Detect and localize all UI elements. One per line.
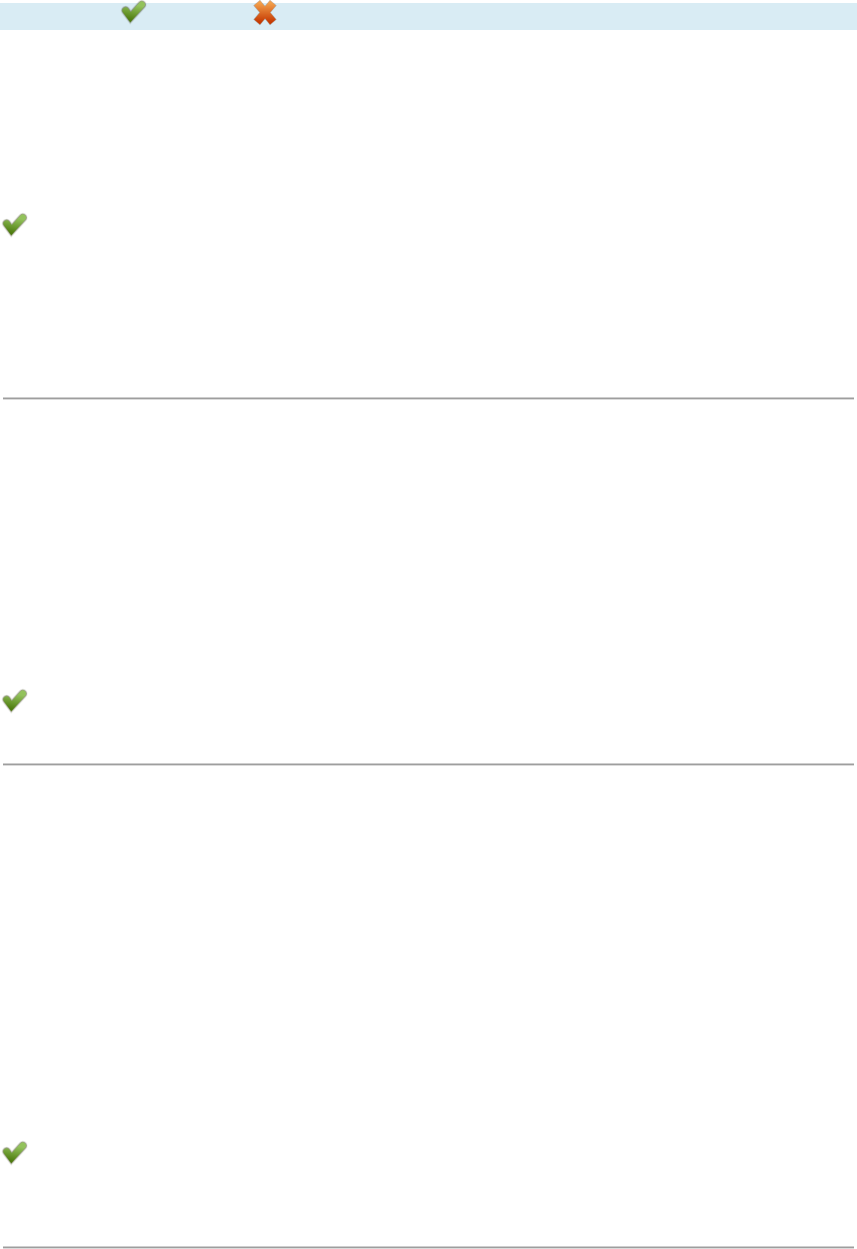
button[interactable]: Supported: [1, 1139, 29, 1165]
button[interactable]: Not supported column: [250, 3, 280, 30]
button[interactable]: Supported: [1, 211, 29, 237]
button[interactable]: Supported: [1, 687, 29, 713]
button[interactable]: Supported column: [118, 3, 150, 30]
